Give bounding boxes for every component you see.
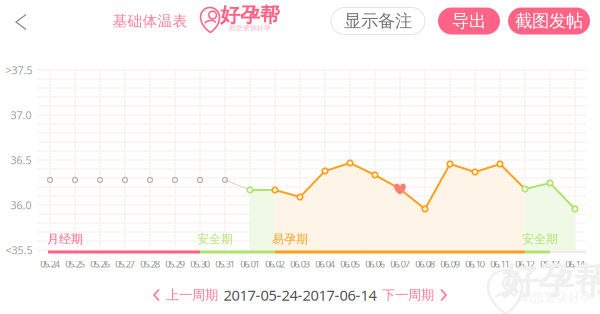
staticText: 06.05 (340, 258, 360, 270)
button[interactable]: 下一周期 (378, 284, 450, 306)
staticText: 导出 (452, 10, 486, 32)
staticText: 06.11 (490, 258, 510, 270)
staticText: 06.04 (315, 258, 335, 270)
staticText: 05.29 (165, 258, 185, 270)
staticText: 下一周期 (382, 287, 434, 303)
button[interactable]: 截图发帖 (508, 7, 590, 34)
staticText: 安全期 (197, 232, 233, 246)
staticText: 36.5 (10, 153, 31, 167)
staticText: 助您更快好孕 (229, 24, 271, 32)
staticText: 06.07 (390, 258, 410, 270)
staticText: 易孕期 (272, 232, 308, 246)
staticText: 05.24 (40, 258, 60, 270)
staticText: 06.01 (240, 258, 260, 270)
staticText: 06.14 (565, 258, 585, 270)
staticText: 05.31 (215, 258, 235, 270)
staticText: 截图发帖 (515, 10, 583, 32)
staticText: 06.06 (365, 258, 385, 270)
staticText: 06.02 (265, 258, 285, 270)
staticText: 06.08 (415, 258, 435, 270)
staticText: 05.28 (140, 258, 160, 270)
staticText: 06.03 (290, 258, 310, 270)
staticText: 05.25 (65, 258, 85, 270)
staticText: >37.5 (5, 63, 32, 77)
staticText: 36.0 (10, 198, 31, 212)
staticText: 05.30 (190, 258, 210, 270)
button[interactable]: 上一周期 (150, 284, 222, 306)
staticText: 助您更快好孕 (520, 290, 592, 304)
staticText: 上一周期 (166, 287, 218, 303)
staticText: 好孕帮 (220, 3, 280, 27)
staticText: 06.10 (465, 258, 485, 270)
button[interactable]: 导出 (438, 7, 500, 34)
staticText: 05.27 (115, 258, 135, 270)
staticText: 基础体温表 (112, 12, 187, 30)
staticText: 05.26 (90, 258, 110, 270)
button[interactable]: Back (5, 6, 37, 38)
staticText: 显示备注 (344, 10, 412, 32)
staticText: 06.09 (440, 258, 460, 270)
staticText: 2017-05-24-2017-06-14 (223, 285, 376, 305)
staticText: 37.0 (10, 108, 31, 122)
staticText: 06.13 (540, 258, 560, 270)
staticText: 好孕帮 (502, 259, 600, 303)
staticText: 月经期 (47, 232, 83, 246)
staticText: 安全期 (522, 232, 558, 246)
staticText: <35.5 (5, 243, 32, 257)
button[interactable]: 显示备注 (331, 7, 425, 34)
staticText: 06.12 (515, 258, 535, 270)
